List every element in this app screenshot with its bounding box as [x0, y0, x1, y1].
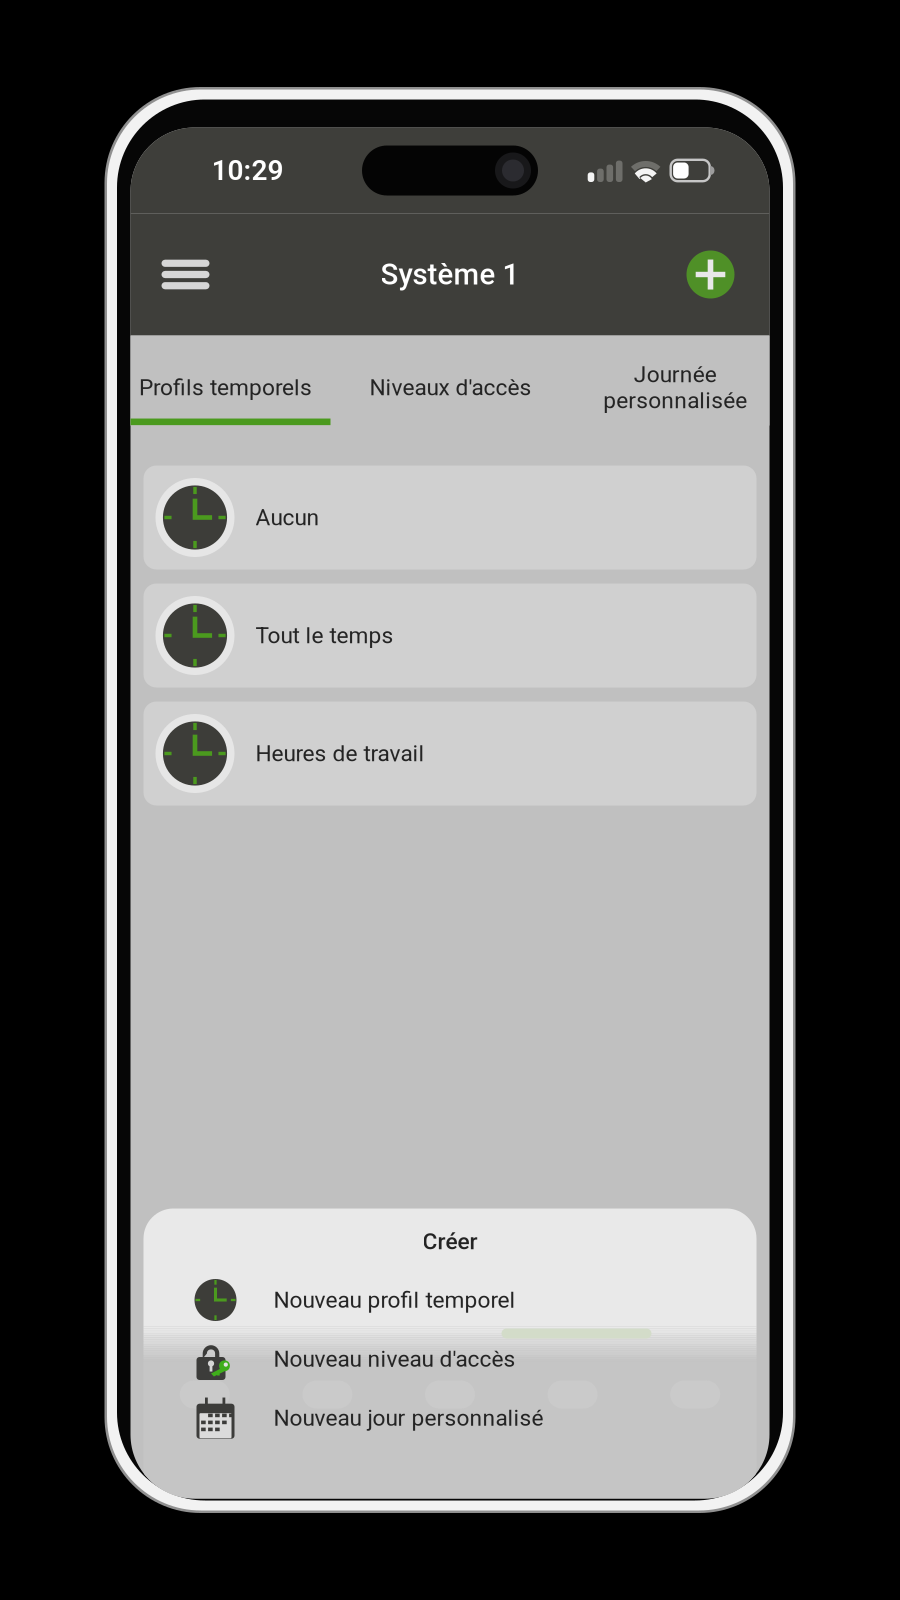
- staticText: Nouveau profil temporel: [273, 1287, 515, 1313]
- staticText: Profils temporels: [139, 375, 312, 400]
- button[interactable]: Aucun: [143, 465, 756, 569]
- staticText: Heures de travail: [255, 741, 424, 766]
- button[interactable]: Journée personnalisée: [580, 347, 769, 427]
- button[interactable]: Nouveau jour personnalisé: [143, 1388, 756, 1447]
- button[interactable]: Heures de travail: [143, 701, 756, 805]
- staticText: Niveaux d'accès: [369, 375, 531, 400]
- button[interactable]: Nouveau niveau d'accès: [143, 1329, 756, 1388]
- button[interactable]: Nouveau profil temporel: [143, 1270, 756, 1329]
- button[interactable]: Niveaux d'accès: [320, 347, 580, 427]
- staticText: Nouveau jour personnalisé: [273, 1405, 543, 1431]
- button[interactable]: Profils temporels: [130, 347, 320, 427]
- staticText: Système 1: [380, 258, 519, 291]
- staticText: Aucun: [255, 505, 319, 530]
- button[interactable]: Add: [675, 239, 745, 309]
- button[interactable]: Tout le temps: [143, 583, 756, 687]
- staticText: 10:29: [211, 154, 283, 186]
- button[interactable]: Menu: [147, 231, 223, 317]
- staticText: Tout le temps: [255, 623, 393, 648]
- staticText: Journée personnalisée: [603, 362, 747, 413]
- staticText: Nouveau niveau d'accès: [273, 1346, 515, 1372]
- staticText: Créer: [422, 1229, 477, 1254]
